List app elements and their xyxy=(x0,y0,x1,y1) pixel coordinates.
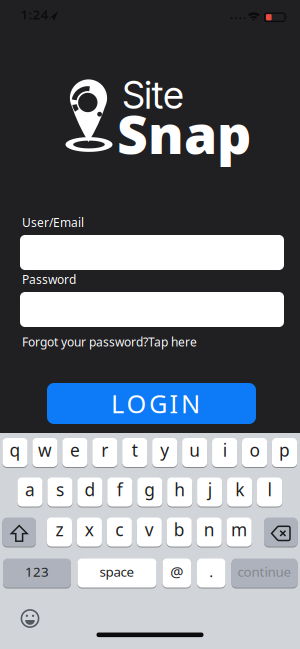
staticText: User/Email xyxy=(22,214,84,230)
button[interactable]: . xyxy=(197,558,225,587)
button[interactable]: f xyxy=(107,477,132,506)
button[interactable]: 123 xyxy=(3,558,71,587)
staticText: d xyxy=(84,478,95,501)
button[interactable]: y xyxy=(152,438,177,467)
staticText: t xyxy=(132,438,138,461)
staticText: q xyxy=(9,438,20,461)
button[interactable]: r xyxy=(92,438,117,467)
staticText: f xyxy=(117,478,123,501)
staticText: 1:24 xyxy=(20,5,48,23)
button[interactable]: e xyxy=(62,438,87,467)
button[interactable]: space xyxy=(77,558,156,587)
staticText: i xyxy=(223,438,227,461)
button[interactable]: v xyxy=(137,517,162,546)
button[interactable]: d xyxy=(77,477,102,506)
staticText: v xyxy=(145,518,154,541)
button[interactable]: c xyxy=(107,517,132,546)
button[interactable]: w xyxy=(32,438,58,467)
staticText: space xyxy=(99,563,134,580)
staticText: g xyxy=(144,478,155,501)
button[interactable]: t xyxy=(122,438,147,467)
staticText: h xyxy=(174,478,185,501)
staticText: w xyxy=(38,438,52,461)
staticText: l xyxy=(268,478,272,501)
staticText: @ xyxy=(170,562,183,581)
staticText: p xyxy=(279,438,290,461)
button[interactable]: i xyxy=(212,438,237,467)
button[interactable]: Delete xyxy=(264,517,298,546)
button[interactable]: continue xyxy=(231,558,297,587)
staticText: . xyxy=(209,562,213,581)
staticText: a xyxy=(25,478,35,501)
button[interactable]: n xyxy=(197,517,222,546)
staticText: 123 xyxy=(25,563,49,580)
staticText: r xyxy=(101,438,108,461)
staticText: z xyxy=(55,518,63,541)
button[interactable]: j xyxy=(197,477,222,506)
staticText: Site xyxy=(122,72,183,118)
button[interactable]: o xyxy=(242,438,267,467)
staticText: s xyxy=(56,478,64,501)
staticText: o xyxy=(250,438,260,461)
button[interactable]: k xyxy=(227,477,252,506)
staticText: n xyxy=(204,518,215,541)
button[interactable]: User/Email xyxy=(20,235,284,270)
button[interactable]: q xyxy=(2,438,28,467)
button[interactable]: z xyxy=(47,517,72,546)
button[interactable]: @ xyxy=(162,558,191,587)
button[interactable]: g xyxy=(137,477,162,506)
staticText: c xyxy=(115,518,123,541)
staticText: Snap xyxy=(117,98,251,169)
button[interactable]: Password xyxy=(20,292,284,327)
button[interactable]: b xyxy=(167,517,192,546)
staticText: Password xyxy=(22,271,76,287)
button[interactable]: p xyxy=(272,438,297,467)
button[interactable]: a xyxy=(17,477,43,506)
button[interactable]: l xyxy=(257,477,282,506)
staticText: e xyxy=(70,438,80,461)
button[interactable]: x xyxy=(77,517,102,546)
staticText: u xyxy=(189,438,200,461)
button[interactable]: Emoji xyxy=(20,609,39,628)
staticText: LOGIN xyxy=(111,387,200,420)
button[interactable]: m xyxy=(226,517,252,546)
button[interactable]: u xyxy=(182,438,207,467)
staticText: m xyxy=(231,518,247,541)
staticText: k xyxy=(235,478,244,501)
button[interactable]: Forgot your password?Tap here xyxy=(22,334,197,350)
staticText: continue xyxy=(237,563,291,580)
staticText: y xyxy=(160,438,169,461)
staticText: Forgot your password?Tap here xyxy=(22,334,197,350)
button[interactable]: s xyxy=(47,477,72,506)
staticText: b xyxy=(174,518,185,541)
staticText: j xyxy=(208,478,212,501)
button[interactable]: Shift xyxy=(2,517,36,546)
button[interactable]: h xyxy=(167,477,192,506)
button[interactable]: LOGIN xyxy=(47,383,256,424)
staticText: x xyxy=(85,518,94,541)
